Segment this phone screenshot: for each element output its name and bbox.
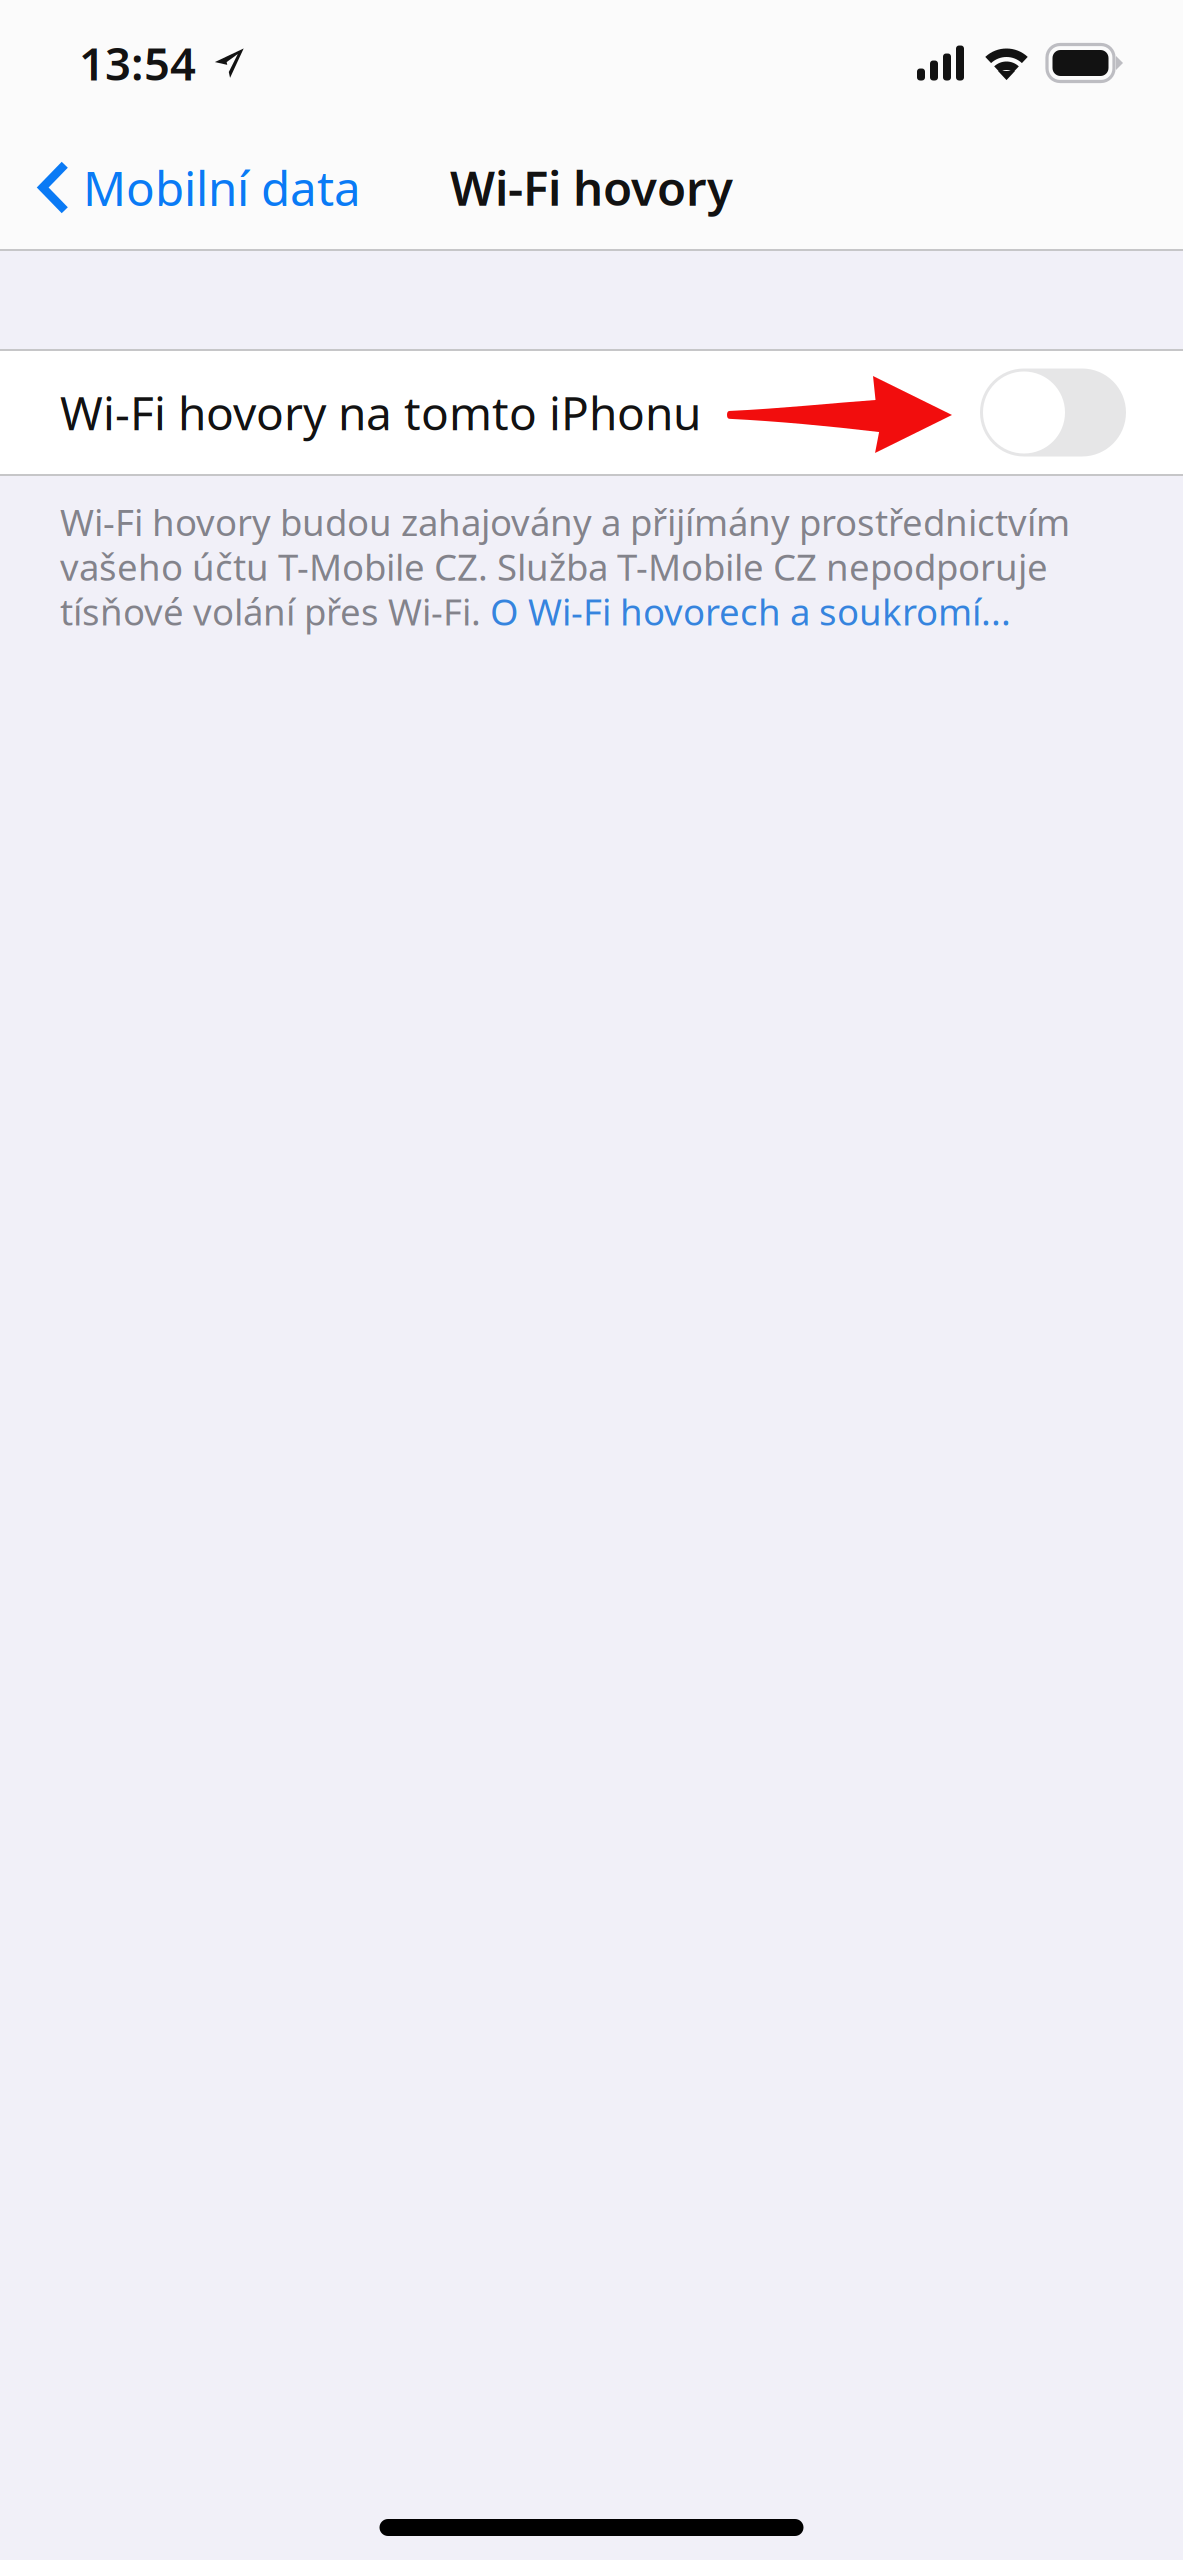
staticText: tísňové volání přes Wi-Fi. bbox=[60, 586, 490, 636]
staticText: Wi-Fi hovory bbox=[450, 155, 733, 220]
staticText: 13:54 bbox=[79, 32, 196, 94]
staticText: Wi-Fi hovory budou zahajovány a přijímán… bbox=[60, 497, 1070, 547]
button[interactable]: O Wi-Fi hovorech a soukromí... bbox=[490, 586, 1011, 636]
button[interactable]: Mobilní data bbox=[0, 141, 361, 234]
staticText: Mobilní data bbox=[83, 155, 361, 220]
staticText: O Wi-Fi hovorech a soukromí... bbox=[490, 586, 1011, 636]
staticText: Wi-Fi hovory na tomto iPhonu bbox=[60, 381, 701, 444]
staticText: vašeho účtu T-Mobile CZ. Služba T-Mobile… bbox=[60, 542, 1048, 592]
button[interactable]: Wi-Fi hovory na tomto iPhonu bbox=[0, 351, 1183, 474]
